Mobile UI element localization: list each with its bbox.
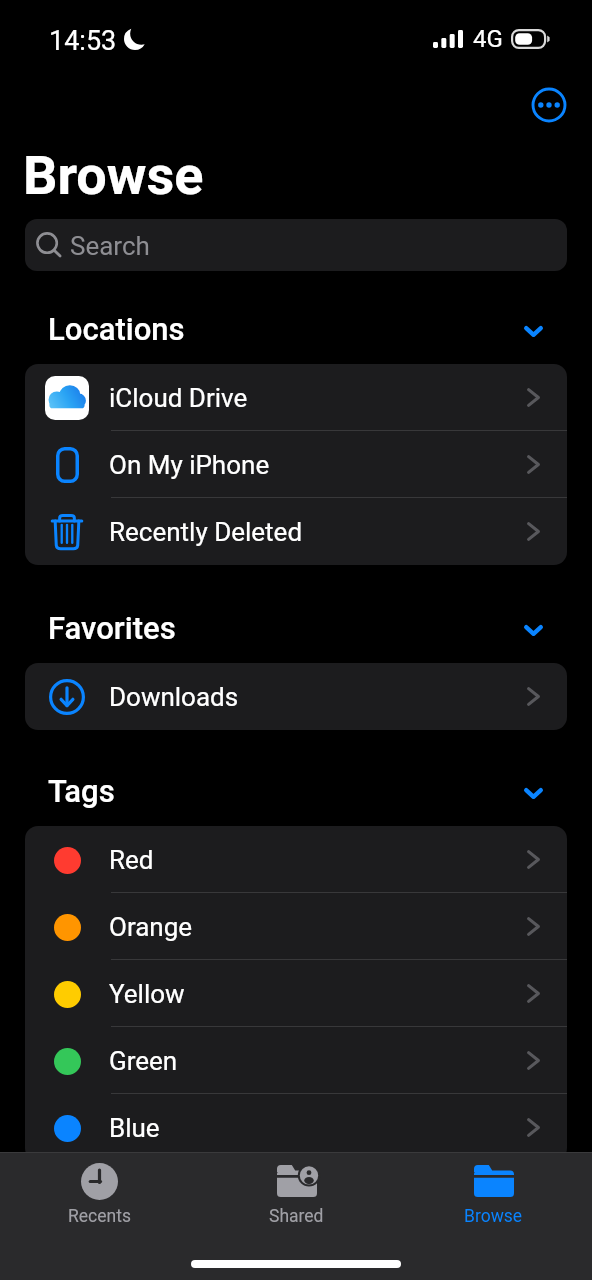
- button[interactable]: Search: [25, 219, 567, 271]
- button[interactable]: Recents: [0, 1153, 198, 1227]
- button[interactable]: Recently Deleted: [25, 498, 567, 565]
- staticText: 14:53: [49, 25, 117, 57]
- staticText: Tags: [48, 773, 115, 809]
- staticText: Green: [109, 1046, 178, 1076]
- staticText: Downloads: [109, 682, 239, 712]
- button[interactable]: Collapse Favorites: [516, 613, 550, 647]
- button[interactable]: Yellow: [25, 960, 567, 1027]
- button[interactable]: Collapse Locations: [516, 314, 550, 348]
- staticText: Recently Deleted: [109, 517, 303, 547]
- button[interactable]: Red: [25, 826, 567, 893]
- button[interactable]: Blue: [25, 1094, 567, 1161]
- button[interactable]: Collapse Tags: [516, 776, 550, 810]
- staticText: iCloud Drive: [109, 383, 248, 413]
- staticText: Favorites: [48, 610, 176, 646]
- staticText: Shared: [269, 1206, 324, 1227]
- button[interactable]: Browse: [395, 1153, 592, 1227]
- button[interactable]: Shared: [198, 1153, 395, 1227]
- button[interactable]: Green: [25, 1027, 567, 1094]
- button[interactable]: Downloads: [25, 663, 567, 730]
- staticText: Browse: [23, 144, 204, 207]
- button[interactable]: Orange: [25, 893, 567, 960]
- staticText: Locations: [48, 311, 185, 347]
- button[interactable]: More options: [527, 83, 571, 127]
- staticText: On My iPhone: [109, 450, 270, 480]
- staticText: 4G: [473, 25, 503, 53]
- staticText: Browse: [464, 1206, 523, 1227]
- staticText: Blue: [109, 1113, 160, 1143]
- staticText: Search: [70, 231, 150, 261]
- staticText: Recents: [68, 1206, 131, 1227]
- staticText: Yellow: [109, 979, 185, 1009]
- button[interactable]: On My iPhone: [25, 431, 567, 498]
- staticText: Orange: [109, 912, 193, 942]
- staticText: Red: [109, 845, 154, 875]
- button[interactable]: iCloud Drive: [25, 364, 567, 431]
